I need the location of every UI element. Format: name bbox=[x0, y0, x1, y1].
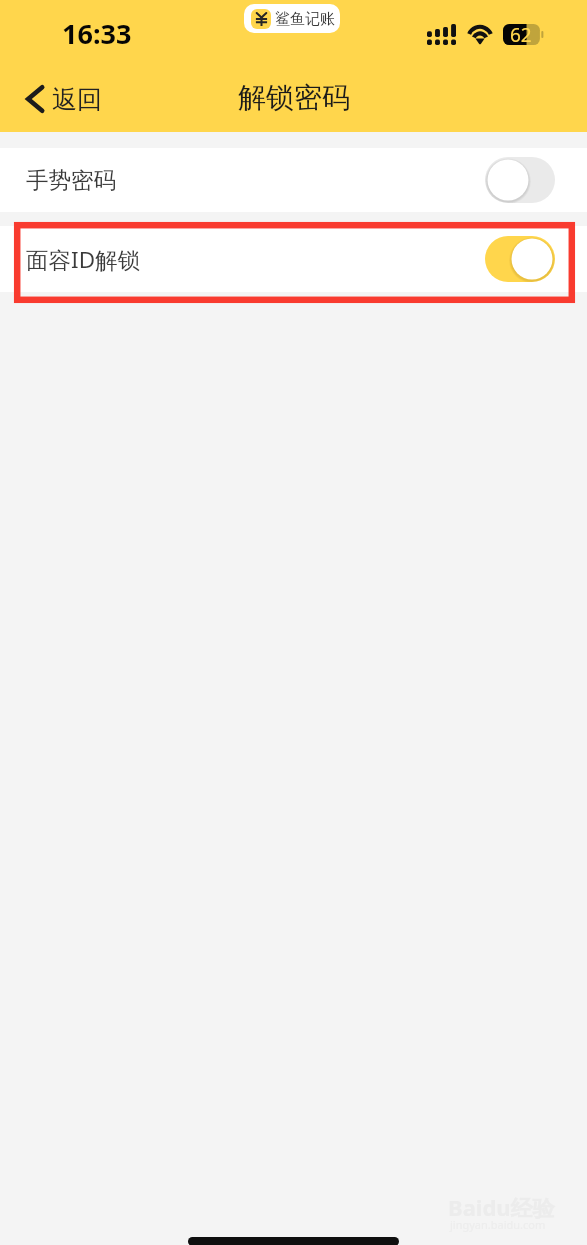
staticText: 解锁密码 bbox=[238, 80, 350, 115]
staticText: 面容ID解锁 bbox=[26, 244, 141, 275]
staticText: Baidu经验 bbox=[448, 1192, 555, 1222]
staticText: 返回 bbox=[52, 84, 102, 115]
button[interactable]: 返回 bbox=[0, 70, 118, 128]
staticText: 16:33 bbox=[62, 15, 132, 52]
staticText: 手势密码 bbox=[26, 166, 116, 194]
button[interactable]: 面容ID解锁 bbox=[0, 226, 587, 292]
staticText: 鲨鱼记账 bbox=[275, 10, 335, 29]
button[interactable]: 关闭 bbox=[485, 157, 555, 203]
button[interactable]: 开启 bbox=[485, 236, 555, 282]
staticText: 62 bbox=[510, 22, 532, 43]
button[interactable]: 手势密码 bbox=[0, 148, 587, 212]
